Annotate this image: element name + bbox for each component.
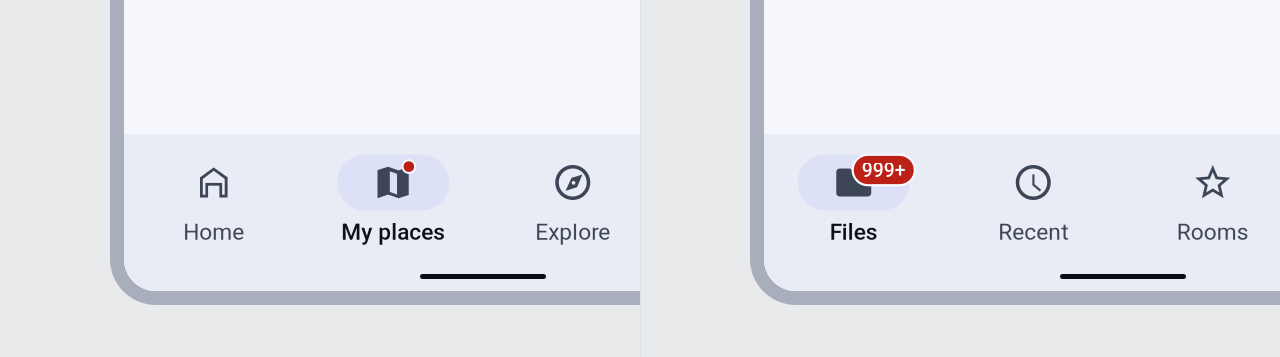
- button[interactable]: 999+: [764, 134, 943, 291]
- staticText: My places: [341, 219, 445, 245]
- staticText: Recent: [998, 219, 1068, 245]
- staticText: 999+: [862, 159, 906, 182]
- button[interactable]: Rooms: [1123, 134, 1280, 291]
- button[interactable]: Recent: [943, 134, 1123, 291]
- staticText: Home: [183, 219, 244, 245]
- staticText: Files: [830, 219, 878, 245]
- staticText: Explore: [535, 219, 610, 245]
- button[interactable]: Home: [124, 134, 303, 291]
- button[interactable]: Explore: [483, 134, 662, 291]
- staticText: Rooms: [1177, 219, 1249, 245]
- button[interactable]: My places: [303, 134, 483, 291]
